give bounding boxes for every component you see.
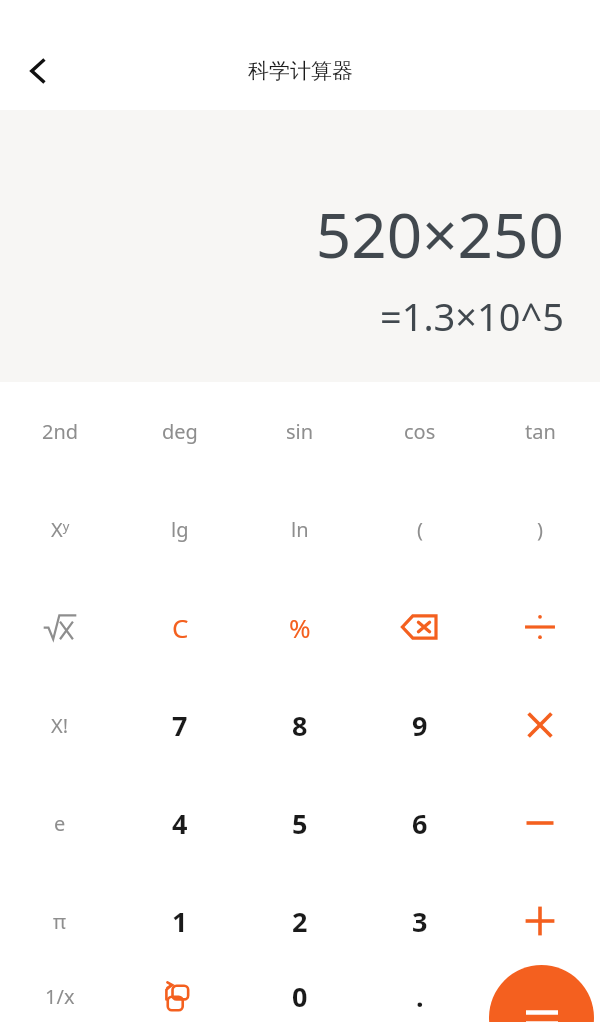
button[interactable]: Equals (489, 965, 594, 1022)
staticText: 2 (292, 903, 308, 940)
button[interactable]: 9 (360, 676, 480, 774)
staticText: cos (404, 418, 436, 445)
staticText: ln (291, 516, 309, 543)
staticText: π (53, 908, 67, 935)
button[interactable]: 4 (120, 774, 240, 872)
button[interactable]: e (0, 774, 120, 872)
button[interactable]: C (120, 578, 240, 676)
button[interactable]: ( (360, 480, 480, 578)
button[interactable]: 2 (240, 872, 360, 970)
staticText: 3 (412, 903, 428, 940)
button[interactable]: Xy (0, 480, 120, 578)
staticText: 6 (412, 805, 428, 842)
button[interactable]: π (0, 872, 120, 970)
staticText: 1/x (45, 983, 75, 1010)
button[interactable]: Plus (480, 872, 600, 970)
staticText: . (416, 978, 424, 1015)
button[interactable]: Divide (480, 578, 600, 676)
staticText: 科学计算器 (248, 58, 353, 84)
staticText: tan (525, 418, 556, 445)
button[interactable]: % (240, 578, 360, 676)
button[interactable]: deg (120, 382, 240, 480)
staticText: sin (286, 418, 314, 445)
button[interactable]: 1/x (0, 970, 120, 1022)
button[interactable]: 5 (240, 774, 360, 872)
button[interactable]: 8 (240, 676, 360, 774)
button[interactable]: 0 (240, 970, 360, 1022)
button[interactable]: Multiply (480, 676, 600, 774)
button[interactable]: ) (480, 480, 600, 578)
button[interactable]: 7 (120, 676, 240, 774)
button[interactable]: lg (120, 480, 240, 578)
button[interactable]: ln (240, 480, 360, 578)
staticText: 8 (292, 707, 308, 744)
staticText: % (289, 610, 311, 645)
button[interactable]: 1 (120, 872, 240, 970)
staticText: X! (51, 712, 69, 739)
button[interactable]: X! (0, 676, 120, 774)
button[interactable]: History (120, 970, 240, 1022)
button[interactable]: Square root (0, 578, 120, 676)
staticText: 0 (292, 978, 308, 1015)
button[interactable]: 3 (360, 872, 480, 970)
staticText: Xy (51, 516, 70, 543)
staticText: deg (162, 418, 198, 445)
staticText: 1 (172, 903, 188, 940)
staticText: =1.3×10^5 (379, 290, 564, 342)
staticText: C (172, 610, 189, 645)
button[interactable]: cos (360, 382, 480, 480)
button[interactable]: 2nd (0, 382, 120, 480)
staticText: e (54, 810, 66, 837)
staticText: 9 (412, 707, 428, 744)
staticText: lg (171, 516, 189, 543)
staticText: 4 (172, 805, 188, 842)
staticText: ) (537, 516, 543, 543)
staticText: 2nd (42, 418, 79, 445)
button[interactable]: Backspace (360, 578, 480, 676)
button[interactable]: Minus (480, 774, 600, 872)
button[interactable]: sin (240, 382, 360, 480)
staticText: 7 (172, 707, 188, 744)
staticText: 520×250 (315, 192, 564, 276)
button[interactable]: 6 (360, 774, 480, 872)
staticText: ( (417, 516, 423, 543)
button[interactable]: . (360, 970, 480, 1022)
button[interactable]: Back (8, 41, 68, 101)
staticText: 5 (292, 805, 308, 842)
button[interactable]: tan (480, 382, 600, 480)
